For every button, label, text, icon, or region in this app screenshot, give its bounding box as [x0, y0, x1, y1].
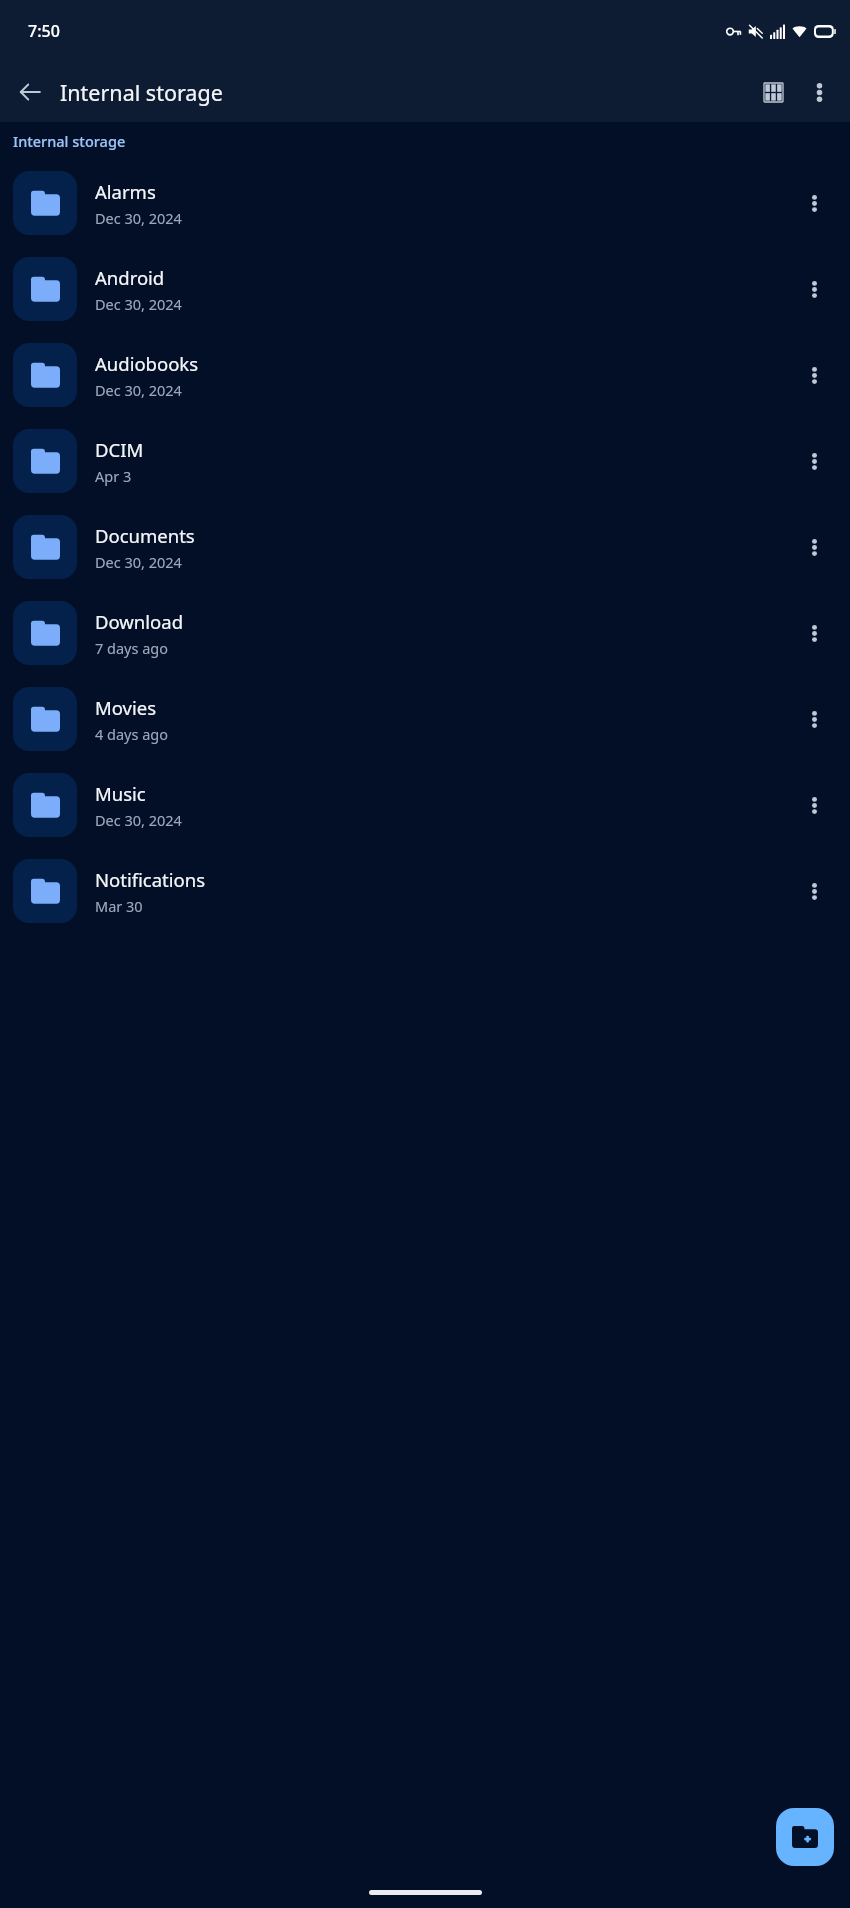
- button[interactable]: Grid view: [750, 69, 796, 115]
- button[interactable]: More options for Documents: [790, 523, 838, 571]
- button[interactable]: More options for Audiobooks: [790, 351, 838, 399]
- staticText: Android: [95, 265, 165, 290]
- button[interactable]: More options for Music: [790, 781, 838, 829]
- button[interactable]: More options for Movies: [790, 695, 838, 743]
- staticText: Apr 3: [95, 466, 132, 486]
- staticText: Dec 30, 2024: [95, 294, 182, 314]
- button[interactable]: More options for Alarms: [790, 179, 838, 227]
- button[interactable]: Movies: [0, 676, 850, 762]
- button[interactable]: Download: [0, 590, 850, 676]
- staticText: Mar 30: [95, 896, 143, 916]
- staticText: Dec 30, 2024: [95, 380, 182, 400]
- staticText: Dec 30, 2024: [95, 208, 182, 228]
- button[interactable]: More options for Android: [790, 265, 838, 313]
- staticText: Dec 30, 2024: [95, 552, 182, 572]
- button[interactable]: Audiobooks: [0, 332, 850, 418]
- button[interactable]: More options for Notifications: [790, 867, 838, 915]
- staticText: Movies: [95, 695, 157, 720]
- button[interactable]: Android: [0, 246, 850, 332]
- staticText: Dec 30, 2024: [95, 810, 182, 830]
- staticText: Audiobooks: [95, 351, 199, 376]
- button[interactable]: DCIM: [0, 418, 850, 504]
- button[interactable]: More options for Download: [790, 609, 838, 657]
- button[interactable]: Notifications: [0, 848, 850, 934]
- button[interactable]: More options for DCIM: [790, 437, 838, 485]
- staticText: Download: [95, 609, 184, 634]
- staticText: 7 days ago: [95, 638, 169, 658]
- staticText: Music: [95, 781, 146, 806]
- staticText: DCIM: [95, 437, 144, 462]
- button[interactable]: Alarms: [0, 160, 850, 246]
- staticText: Internal storage: [13, 131, 126, 151]
- button[interactable]: Documents: [0, 504, 850, 590]
- button[interactable]: More options: [796, 69, 842, 115]
- staticText: Notifications: [95, 867, 206, 892]
- button[interactable]: Back: [8, 70, 52, 114]
- button[interactable]: Create new folder: [776, 1808, 834, 1866]
- button[interactable]: Music: [0, 762, 850, 848]
- staticText: Documents: [95, 523, 195, 548]
- staticText: 7:50: [28, 20, 60, 42]
- staticText: Alarms: [95, 179, 156, 204]
- staticText: Internal storage: [60, 78, 223, 107]
- staticText: 4 days ago: [95, 724, 169, 744]
